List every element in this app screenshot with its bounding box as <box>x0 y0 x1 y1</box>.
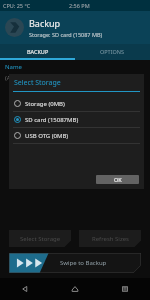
button[interactable]: BACKUP <box>0 44 75 58</box>
staticText: Swipe to Backup <box>60 259 107 267</box>
staticText: Storage (0MB) <box>25 100 65 108</box>
staticText: SD card (15087MB) <box>25 116 79 124</box>
staticText: Storage: SD card (15087 MB) <box>29 31 103 38</box>
button[interactable]: OPTIONS <box>75 44 150 58</box>
staticText: Refresh Sizes <box>92 235 129 243</box>
staticText: Select Storage <box>20 235 61 243</box>
staticText: BACKUP <box>27 48 49 55</box>
button[interactable]: Home <box>50 278 100 300</box>
staticText: 2:56 PM <box>69 2 90 9</box>
button[interactable]: Swipe to Backup <box>9 253 141 273</box>
button[interactable]: SD card (15087MB) <box>9 112 144 127</box>
button[interactable]: Refresh Sizes <box>79 230 141 247</box>
button[interactable]: Back <box>0 278 50 300</box>
staticText: (Auto Generate) <box>5 74 50 82</box>
staticText: Backup <box>29 17 61 29</box>
button[interactable]: OK <box>96 175 139 184</box>
button[interactable]: USB OTG (0MB) <box>9 128 144 143</box>
staticText: USB OTG (0MB) <box>25 132 69 140</box>
staticText: OK <box>114 176 122 183</box>
staticText: CPU: 25 °C <box>3 2 31 9</box>
button[interactable]: Recent apps <box>100 278 150 300</box>
button[interactable]: Storage (0MB) <box>9 96 144 111</box>
staticText: Name <box>5 63 22 71</box>
staticText: Select Storage <box>14 78 61 88</box>
button[interactable]: Select Storage <box>9 230 71 247</box>
staticText: OPTIONS <box>100 48 125 55</box>
